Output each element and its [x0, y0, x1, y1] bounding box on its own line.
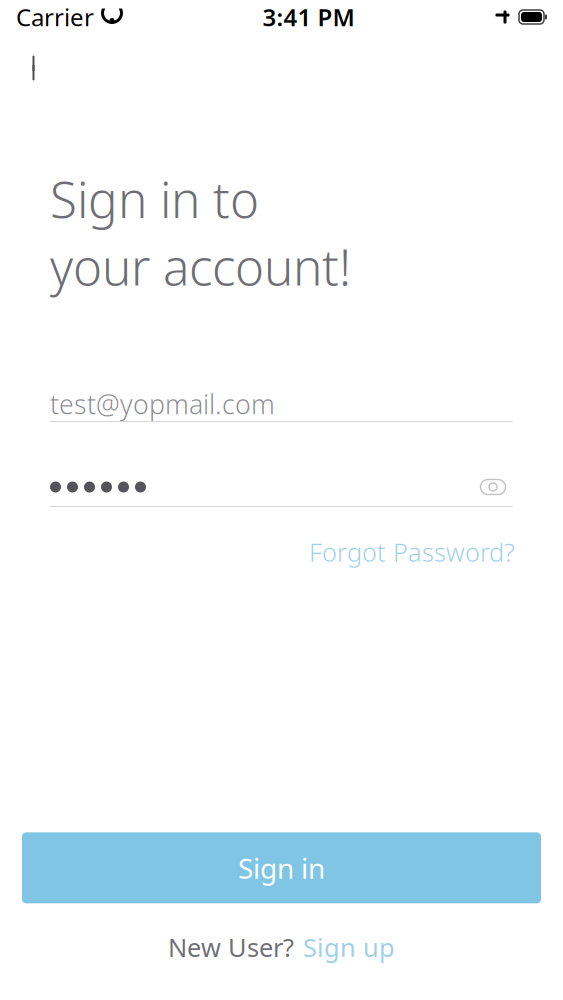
staticText: Sign in — [238, 849, 325, 886]
button[interactable]: Back — [13, 46, 57, 90]
button[interactable]: Forgot Password? — [309, 535, 515, 569]
staticText: New User? — [168, 930, 294, 964]
staticText: Carrier — [16, 1, 94, 33]
staticText: Sign in to — [50, 166, 259, 231]
staticText: 3:41 PM — [262, 1, 354, 33]
staticText: Sign up — [303, 930, 395, 964]
button[interactable]: Sign up — [303, 930, 395, 964]
staticText: your account! — [50, 233, 351, 299]
button[interactable]: Sign in — [22, 832, 541, 903]
staticText: test@yopmail.com — [50, 386, 275, 422]
button[interactable]: Show password — [473, 470, 513, 504]
staticText: Forgot Password? — [309, 535, 515, 569]
